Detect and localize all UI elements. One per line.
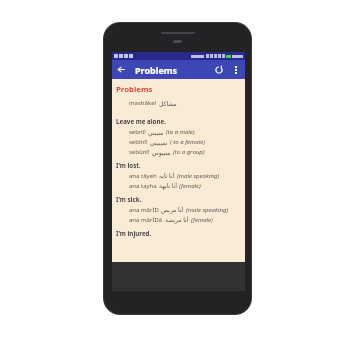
staticText: (male speaking) — [186, 206, 229, 214]
button[interactable]: sebnî! — [116, 127, 241, 137]
staticText: ana mârÎDâ — [129, 216, 163, 224]
staticText: أنا مريض — [161, 206, 184, 214]
staticText: أنا تايهة — [159, 182, 177, 190]
button[interactable]: sebînî! — [116, 137, 241, 147]
staticText: سيبني — [148, 129, 164, 136]
button[interactable]: More options — [228, 62, 243, 77]
staticText: ana tâyeh — [129, 172, 157, 180]
button[interactable]: I'm injured. — [116, 228, 241, 238]
staticText: sebûnî! — [129, 148, 150, 156]
staticText: أنا تايه — [159, 172, 175, 180]
staticText: ana tayha — [129, 182, 157, 190]
button[interactable]: I'm sick. — [116, 194, 241, 204]
staticText: (female) — [179, 182, 201, 190]
staticText: (to a group) — [173, 148, 205, 156]
staticText: (male speaking) — [177, 172, 220, 180]
button[interactable]: Refresh — [209, 60, 228, 79]
button[interactable]: ana mârÎDâ — [116, 215, 241, 225]
staticText: سيبيني — [150, 139, 168, 146]
staticText: mashâkel — [129, 99, 157, 107]
staticText: سيبوني — [152, 149, 171, 156]
button[interactable]: ana tayha — [116, 181, 241, 191]
button[interactable]: mashâkel — [116, 98, 241, 108]
button[interactable]: Leave me alone. — [116, 116, 241, 126]
staticText: sebînî! — [129, 138, 148, 146]
staticText: أنا مريضة — [165, 216, 189, 224]
button[interactable]: ana tâyeh — [116, 171, 241, 181]
button[interactable]: ana mârÎD — [116, 205, 241, 215]
staticText: sebnî! — [129, 128, 146, 136]
button[interactable]: I'm lost. — [116, 160, 241, 170]
button[interactable]: Back — [112, 60, 131, 79]
button[interactable]: Problems — [116, 84, 153, 95]
staticText: مشاكل — [159, 100, 177, 107]
staticText: Problems — [135, 64, 178, 76]
staticText: ana mârÎD — [129, 206, 159, 214]
staticText: ( to a female) — [170, 138, 206, 146]
staticText: (female) — [191, 216, 213, 224]
button[interactable]: sebûnî! — [116, 147, 241, 157]
staticText: (to a male). — [166, 128, 197, 136]
